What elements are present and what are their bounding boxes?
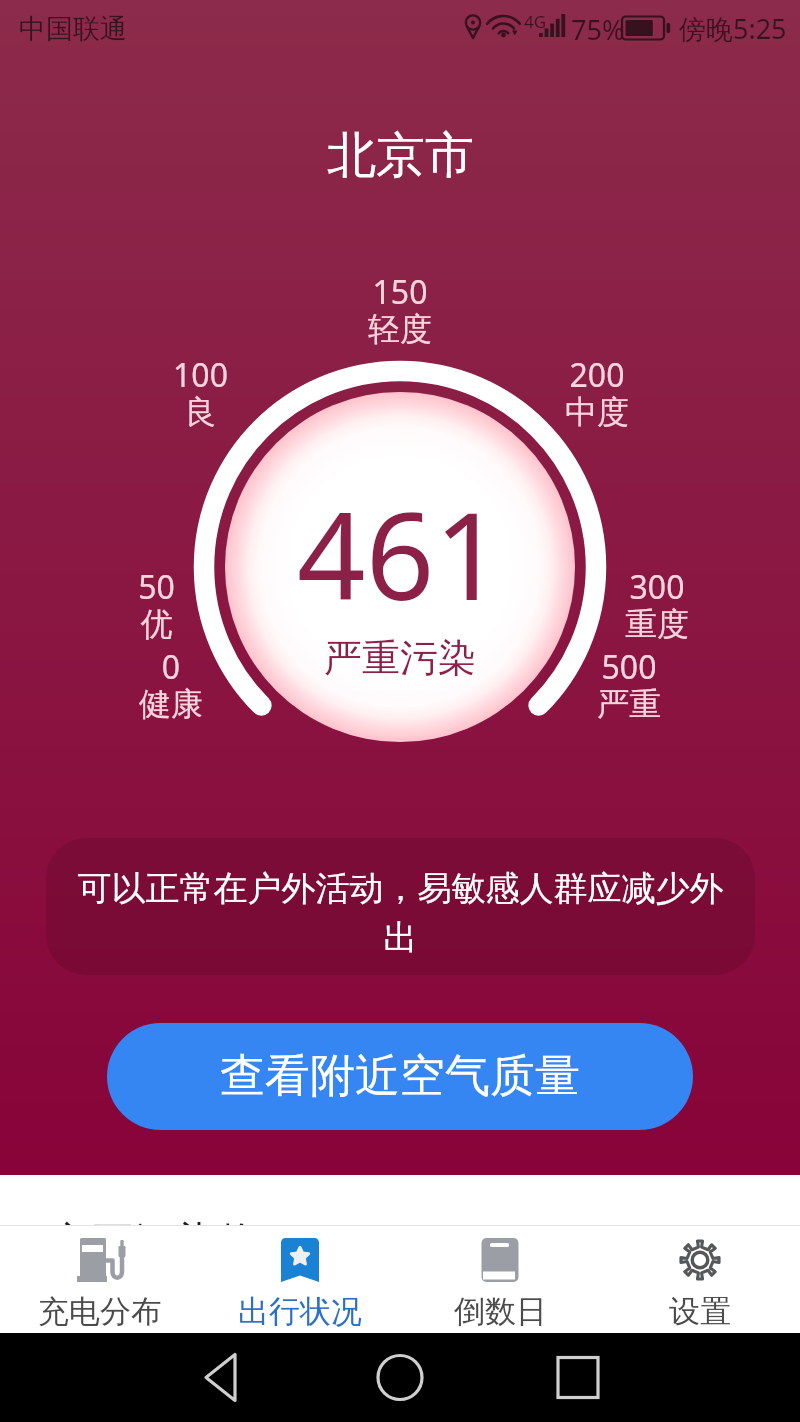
staticText: 150 轻度 <box>368 270 432 349</box>
staticText: 充电分布 <box>38 1292 162 1331</box>
button[interactable]: 充电分布 <box>0 1226 200 1333</box>
staticText: 可以正常在户外活动，易敏感人群应减少外出 <box>64 867 737 959</box>
button[interactable]: 查看附近空气质量 <box>107 1023 693 1130</box>
staticText: 461 <box>297 472 503 635</box>
staticText: 查看附近空气质量 <box>220 1048 580 1105</box>
staticText: 主要污染物 <box>50 1217 260 1225</box>
button[interactable]: 出行状况 <box>200 1226 400 1333</box>
staticText: 倒数日 <box>454 1292 547 1331</box>
staticText: 75% <box>571 11 625 48</box>
button[interactable]: 可以正常在户外活动，易敏感人群应减少外出 <box>46 838 755 975</box>
button[interactable]: 倒数日 <box>400 1226 600 1333</box>
button[interactable]: 设置 <box>600 1226 800 1333</box>
staticText: 500 严重 <box>597 645 661 724</box>
staticText: 50 优 <box>138 565 175 644</box>
staticText: 出行状况 <box>238 1292 362 1331</box>
staticText: 100 良 <box>173 353 228 432</box>
staticText: 中国联通 <box>19 12 127 46</box>
staticText: 设置 <box>669 1292 731 1331</box>
staticText: 0 健康 <box>139 645 203 724</box>
staticText: 傍晚5:25 <box>679 10 787 47</box>
staticText: 300 重度 <box>625 565 689 644</box>
staticText: 严重污染 <box>324 634 476 682</box>
staticText: 200 中度 <box>565 353 629 432</box>
staticText: 4G <box>524 10 547 33</box>
staticText: 北京市 <box>327 125 474 187</box>
